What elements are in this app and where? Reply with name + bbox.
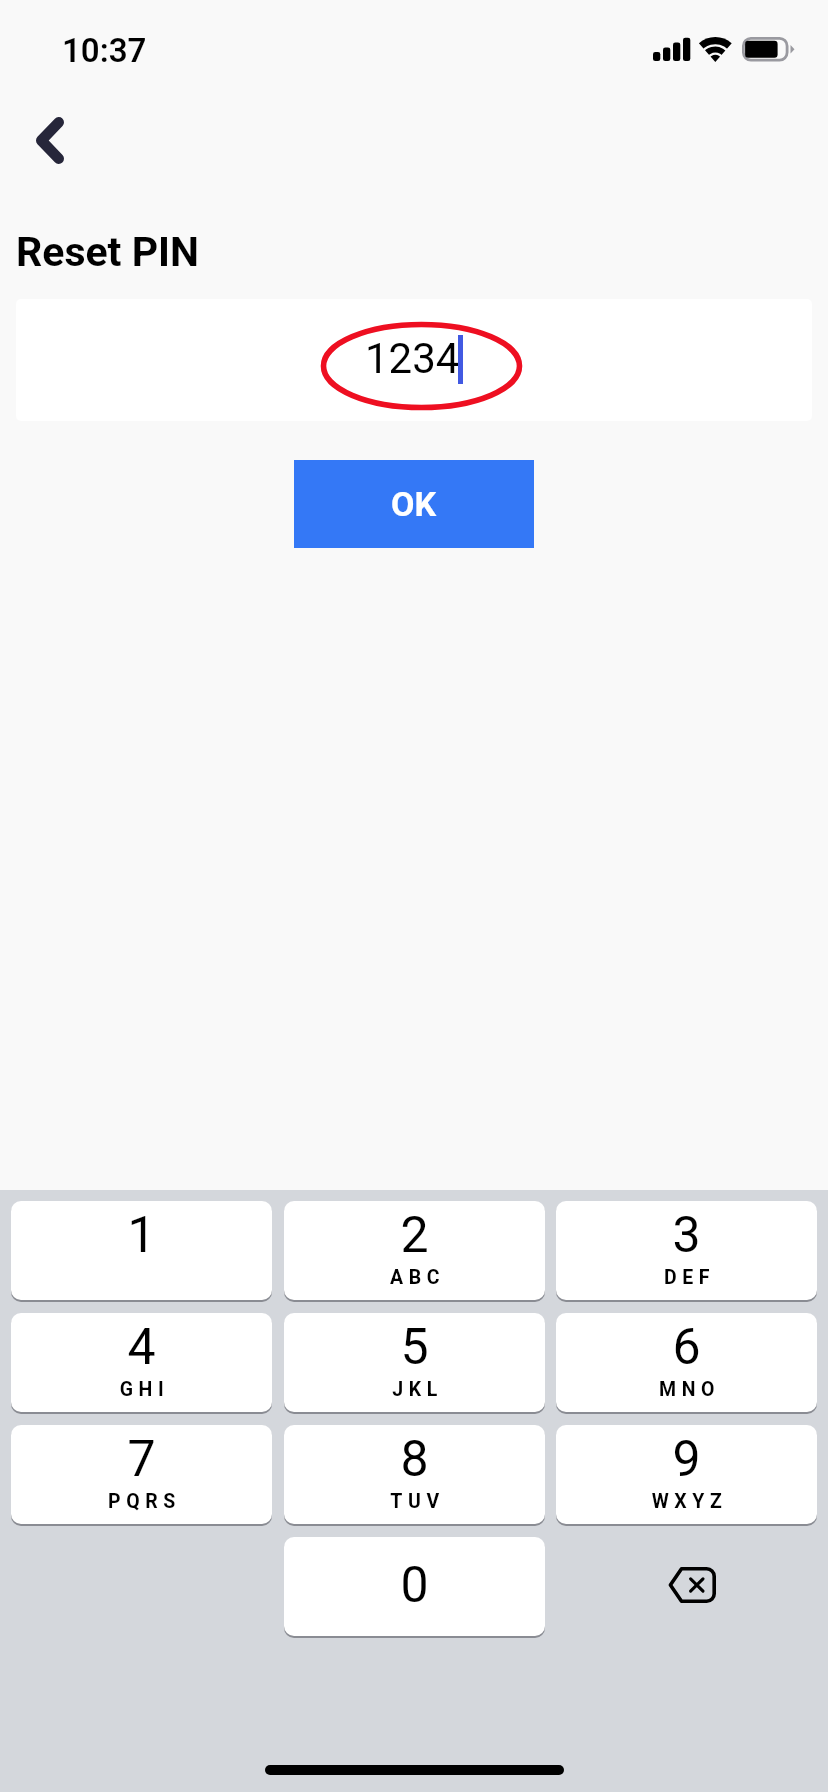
button[interactable]: Backspace: [556, 1537, 817, 1636]
button[interactable]: 1: [11, 1201, 272, 1300]
button[interactable]: 9: [556, 1425, 817, 1524]
staticText: 6: [556, 1318, 817, 1377]
staticText: 7: [11, 1430, 272, 1489]
staticText: DEF: [559, 1266, 817, 1289]
staticText: OK: [391, 484, 437, 524]
button[interactable]: 8: [284, 1425, 545, 1524]
staticText: ABC: [287, 1266, 545, 1289]
button[interactable]: 6: [556, 1313, 817, 1412]
staticText: PQRS: [14, 1490, 272, 1513]
staticText: WXYZ: [559, 1490, 817, 1513]
button[interactable]: Back: [8, 96, 92, 184]
staticText: 10:37: [62, 31, 147, 70]
staticText: 0: [284, 1556, 545, 1615]
staticText: 1234: [365, 334, 460, 383]
staticText: 8: [284, 1430, 545, 1489]
staticText: GHI: [14, 1378, 272, 1401]
button[interactable]: 1234: [16, 299, 812, 421]
button[interactable]: 7: [11, 1425, 272, 1524]
staticText: JKL: [287, 1378, 545, 1401]
staticText: 4: [11, 1318, 272, 1377]
staticText: MNO: [559, 1378, 817, 1401]
button[interactable]: 5: [284, 1313, 545, 1412]
staticText: 2: [284, 1206, 545, 1265]
button[interactable]: 3: [556, 1201, 817, 1300]
button[interactable]: 4: [11, 1313, 272, 1412]
staticText: 9: [556, 1430, 817, 1489]
button[interactable]: 2: [284, 1201, 545, 1300]
button[interactable]: OK: [294, 460, 534, 548]
staticText: Reset PIN: [16, 228, 200, 276]
staticText: TUV: [287, 1490, 545, 1513]
staticText: 5: [284, 1318, 545, 1377]
staticText: 3: [556, 1206, 817, 1265]
button[interactable]: 0: [284, 1537, 545, 1636]
staticText: 1: [11, 1206, 272, 1265]
